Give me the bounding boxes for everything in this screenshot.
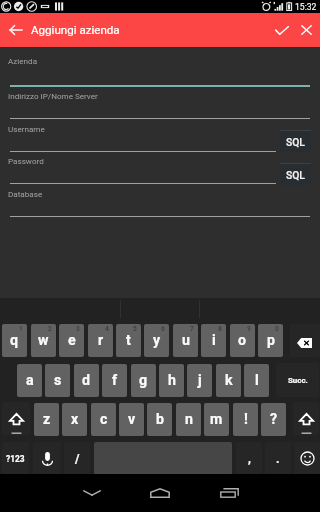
staticText: q (10, 332, 19, 349)
staticText: 7 (190, 325, 194, 333)
staticText: / (75, 452, 80, 466)
button[interactable]: Emoji (294, 442, 320, 475)
button[interactable]: g (131, 364, 156, 397)
staticText: SQL (286, 136, 305, 148)
staticText: p (267, 332, 275, 349)
staticText: . (276, 452, 280, 466)
button[interactable]: v (119, 403, 144, 436)
button[interactable]: Spazio (94, 442, 232, 475)
button[interactable]: ? (261, 403, 286, 436)
button[interactable]: m (204, 403, 229, 436)
button[interactable]: Back (0, 13, 31, 47)
staticText: d (82, 372, 91, 389)
staticText: l (255, 372, 259, 389)
button[interactable]: e (59, 324, 84, 357)
button[interactable]: j (187, 364, 212, 397)
button[interactable]: a (17, 364, 42, 397)
button[interactable]: p (258, 324, 283, 357)
staticText: , (248, 452, 251, 466)
button[interactable]: i (201, 324, 226, 357)
button[interactable]: t (116, 324, 141, 357)
button[interactable]: , (236, 442, 262, 475)
staticText: v (128, 411, 136, 428)
button[interactable]: Maiuscolo (2, 402, 30, 435)
staticText: ! (244, 411, 248, 428)
staticText: g (139, 372, 148, 389)
staticText: Database (8, 189, 43, 198)
staticText: t (126, 332, 131, 349)
button[interactable]: c (91, 403, 116, 436)
staticText: Indirizzo IP/Nome Server (8, 91, 98, 100)
button[interactable]: n (176, 403, 201, 436)
button[interactable]: ! (233, 403, 258, 436)
button[interactable]: k (216, 364, 241, 397)
button[interactable]: q (2, 324, 27, 357)
button[interactable]: Indietro (62, 474, 122, 512)
staticText: w (38, 332, 49, 349)
staticText: 9 (247, 325, 251, 333)
button[interactable]: Succ. (276, 363, 319, 397)
button[interactable]: SQL (280, 163, 311, 185)
staticText: y (153, 332, 161, 349)
button[interactable]: f (102, 364, 127, 397)
staticText: o (238, 332, 247, 349)
button[interactable]: w (31, 324, 56, 357)
staticText: ? (270, 411, 278, 428)
staticText: Succ. (288, 376, 308, 385)
staticText: 8 (218, 325, 222, 333)
staticText: e (68, 332, 76, 349)
staticText: 3 (76, 325, 80, 333)
staticText: c (100, 411, 108, 428)
staticText: n (185, 411, 193, 428)
staticText: z (43, 411, 51, 428)
button[interactable]: SQL (280, 130, 311, 152)
staticText: j (198, 372, 202, 389)
staticText: u (182, 332, 190, 349)
button[interactable]: r (88, 324, 113, 357)
button[interactable]: x (62, 403, 87, 436)
staticText: b (156, 411, 164, 428)
staticText: a (26, 372, 34, 389)
staticText: f (112, 372, 118, 389)
staticText: 5 (133, 325, 137, 333)
staticText: Aggiungi azienda (31, 23, 120, 37)
button[interactable]: y (144, 324, 169, 357)
staticText: 15:32 (295, 2, 317, 12)
button[interactable]: Home (130, 474, 190, 512)
button[interactable]: ?123 (2, 442, 29, 475)
staticText: 4 (105, 325, 109, 333)
button[interactable]: s (45, 364, 70, 397)
button[interactable]: o (230, 324, 255, 357)
button[interactable]: Recenti (199, 474, 259, 512)
button[interactable]: . (265, 442, 291, 475)
staticText: 1 (19, 325, 23, 333)
staticText: h (168, 372, 176, 389)
button[interactable]: / (64, 442, 90, 475)
button[interactable]: h (159, 364, 184, 397)
staticText: Password (8, 156, 44, 165)
staticText: k (225, 372, 233, 389)
staticText: m (210, 411, 223, 428)
staticText: i (212, 332, 216, 349)
staticText: ?123 (6, 454, 25, 464)
button[interactable]: Maiuscolo (293, 402, 319, 435)
button[interactable]: z (34, 403, 59, 436)
button[interactable]: Backspace (290, 324, 320, 357)
staticText: 6 (161, 325, 165, 333)
button[interactable]: Annulla (292, 13, 320, 47)
staticText: Azienda (8, 56, 38, 65)
button[interactable]: d (74, 364, 99, 397)
staticText: s (54, 372, 62, 389)
staticText: x (71, 411, 79, 428)
staticText: SQL (286, 169, 305, 181)
staticText: 2 (48, 325, 52, 333)
button[interactable]: l (244, 364, 269, 397)
staticText: 0 (275, 325, 279, 333)
button[interactable]: u (173, 324, 198, 357)
staticText: r (98, 332, 104, 349)
staticText: Username (8, 124, 45, 133)
button[interactable]: b (147, 403, 172, 436)
button[interactable]: Conferma (265, 13, 298, 47)
button[interactable]: Dettatura vocale (33, 442, 61, 475)
